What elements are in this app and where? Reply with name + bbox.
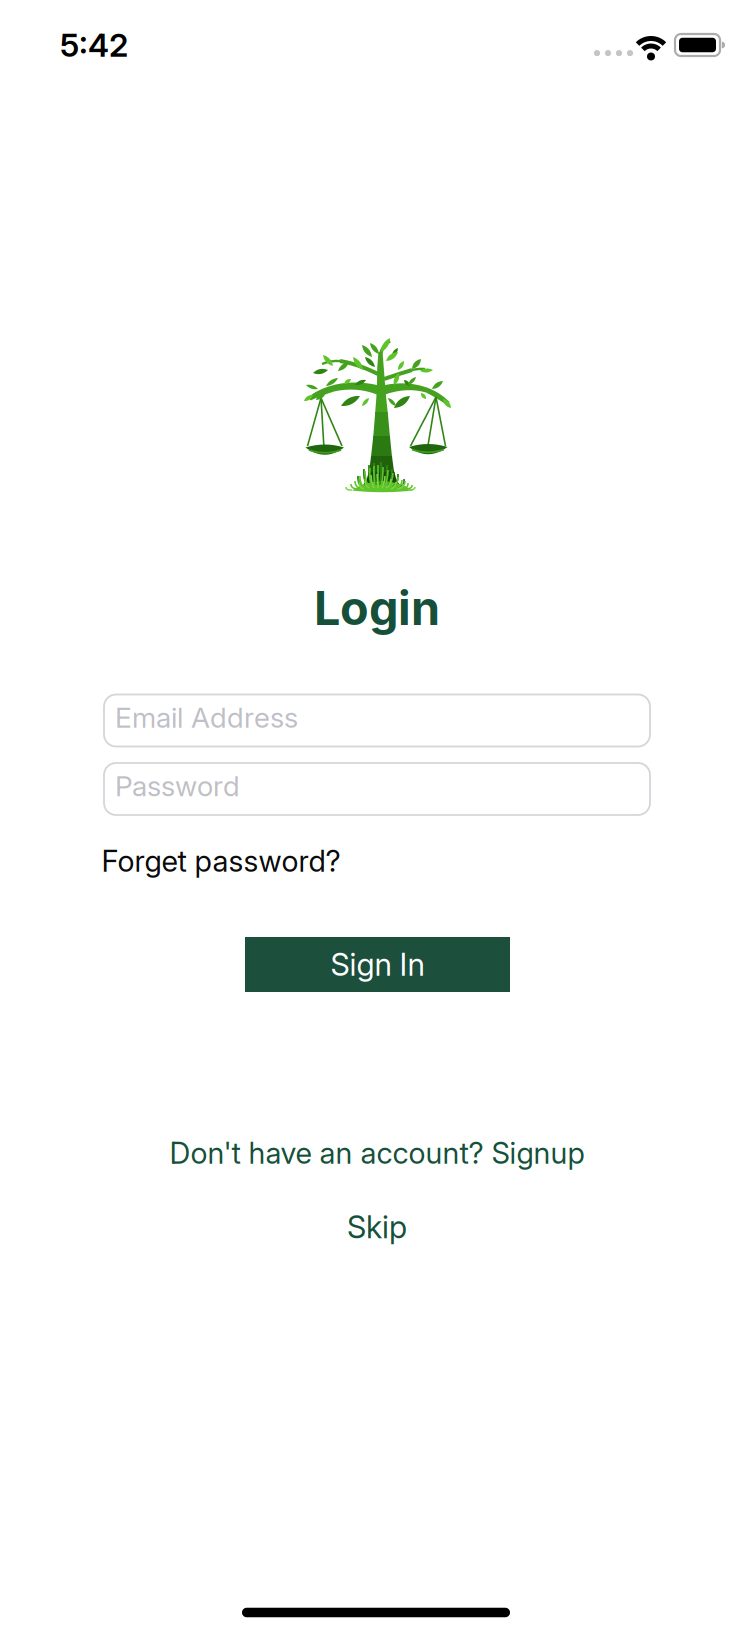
button[interactable]: Skip: [347, 1209, 407, 1245]
staticText: Don't have an account? Signup: [169, 1136, 584, 1170]
button[interactable]: Forget password?: [101, 844, 340, 878]
staticText: [115, 772, 123, 805]
staticText: Forget password?: [101, 844, 340, 878]
staticText: 5:42: [60, 26, 128, 64]
staticText: Skip: [347, 1209, 407, 1245]
staticText: Login: [314, 580, 440, 636]
staticText: Password: [115, 769, 240, 802]
staticText: Email Address: [115, 701, 298, 734]
staticText: [115, 704, 123, 737]
textField[interactable]: [115, 704, 650, 737]
button[interactable]: Sign In: [245, 937, 510, 992]
button[interactable]: Don't have an account? Signup: [169, 1136, 584, 1170]
textField[interactable]: [115, 772, 650, 805]
staticText: Sign In: [330, 946, 424, 983]
